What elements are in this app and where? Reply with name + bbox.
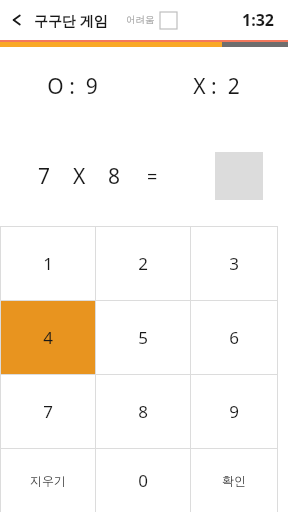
button[interactable]: Back (0, 0, 34, 40)
staticText: 1:32 (242, 9, 274, 31)
staticText: 구구단 게임 (34, 11, 108, 30)
staticText: O : 9 (47, 72, 98, 101)
staticText: 8 (108, 162, 121, 191)
staticText: 확인 (222, 473, 246, 488)
button[interactable]: 4 (1, 301, 95, 374)
staticText: 5 (138, 326, 148, 349)
button[interactable]: 1 (1, 227, 95, 300)
button[interactable]: 6 (191, 301, 277, 374)
staticText: 0 (138, 469, 148, 492)
staticText: 2 (138, 252, 148, 275)
button[interactable]: Difficulty checkbox (160, 12, 177, 29)
staticText: X : 2 (193, 72, 240, 101)
staticText: 지우기 (30, 473, 66, 488)
staticText: 3 (229, 252, 239, 275)
button[interactable]: 9 (191, 375, 277, 448)
staticText: = (147, 164, 158, 189)
button[interactable]: 5 (96, 301, 190, 374)
button[interactable]: 3 (191, 227, 277, 300)
staticText: 4 (43, 326, 53, 349)
staticText: 어려움 (126, 14, 155, 26)
button[interactable]: 2 (96, 227, 190, 300)
button[interactable]: 지우기 (1, 449, 95, 512)
button[interactable]: 7 (1, 375, 95, 448)
staticText: 7 (38, 162, 51, 191)
button[interactable]: 8 (96, 375, 190, 448)
staticText: 6 (229, 326, 239, 349)
button[interactable]: 0 (96, 449, 190, 512)
staticText: 8 (138, 400, 148, 423)
staticText: 7 (43, 400, 53, 423)
staticText: 1 (43, 252, 53, 275)
staticText: X (73, 162, 86, 191)
button[interactable]: 확인 (191, 449, 277, 512)
staticText: 9 (229, 400, 239, 423)
